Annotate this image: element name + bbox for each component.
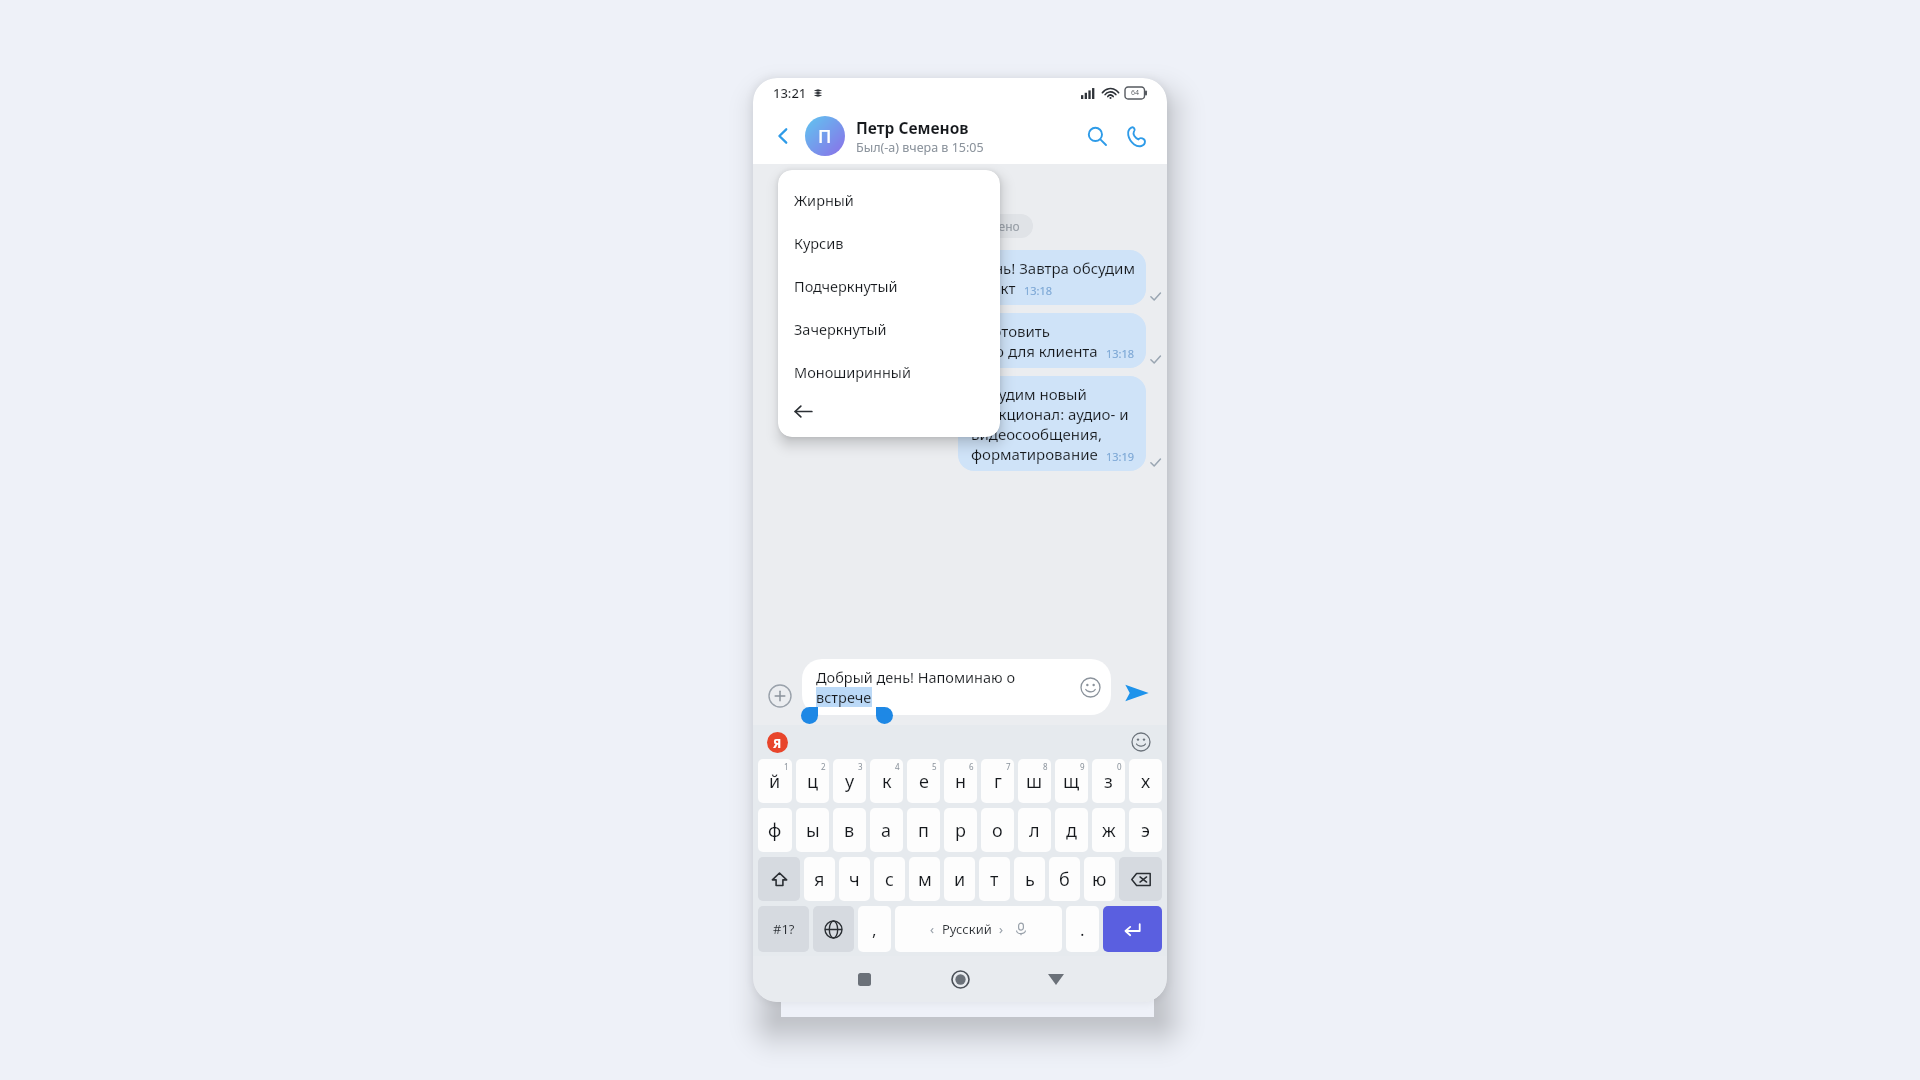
button[interactable]: ‹ [895, 906, 1062, 952]
button[interactable]: д [1055, 808, 1088, 852]
button[interactable]: Нужно подготовить [894, 313, 1146, 368]
button[interactable]: т [979, 857, 1010, 901]
button[interactable]: Моноширинный [778, 350, 1000, 393]
button[interactable]: р [944, 808, 977, 852]
staticText: 13:18 [1106, 346, 1135, 361]
staticText: Сообщение удалено [901, 218, 1020, 234]
button[interactable]: . [1066, 906, 1099, 952]
staticText: р [955, 818, 966, 843]
staticText: Обсудим новый [971, 384, 1087, 404]
staticText: ‹ [930, 920, 935, 938]
button[interactable]: л [1018, 808, 1051, 852]
staticText: › [999, 920, 1004, 938]
button[interactable]: ч [839, 857, 870, 901]
staticText: ю [1092, 867, 1107, 892]
button[interactable]: Курсив [778, 221, 1000, 264]
button[interactable]: ж [1092, 808, 1125, 852]
staticText: в [844, 818, 855, 843]
staticText: щ [1063, 769, 1080, 794]
button[interactable]: Зачеркнутый [778, 307, 1000, 350]
button[interactable]: Home [938, 957, 982, 1001]
staticText: #1? [773, 920, 795, 938]
button[interactable]: Подчеркнутый [778, 264, 1000, 307]
button[interactable]: в [833, 808, 866, 852]
button[interactable]: и [944, 857, 975, 901]
staticText: з [1104, 769, 1113, 794]
button[interactable]: ш [1018, 759, 1051, 803]
button[interactable]: б [1049, 857, 1080, 901]
button[interactable]: Emoji keyboard [1129, 730, 1153, 754]
button[interactable]: Yandex [767, 732, 788, 753]
staticText: а [881, 818, 892, 843]
button[interactable]: Backspace [1119, 857, 1162, 901]
button[interactable]: м [909, 857, 940, 901]
button[interactable]: о [981, 808, 1014, 852]
button[interactable]: х [1129, 759, 1162, 803]
button[interactable]: г [981, 759, 1014, 803]
button[interactable]: Search [1079, 118, 1115, 154]
staticText: Моноширинный [794, 362, 911, 382]
button[interactable]: Call [1117, 118, 1153, 154]
button[interactable]: з [1092, 759, 1125, 803]
staticText: Русский [942, 920, 992, 938]
button[interactable]: #1? [758, 906, 809, 952]
staticText: г [994, 769, 1002, 794]
staticText: Жирный [794, 190, 854, 210]
staticText: к [882, 769, 892, 794]
button[interactable]: ю [1084, 857, 1115, 901]
staticText: 9 [1080, 761, 1085, 772]
button[interactable]: Жирный [778, 178, 1000, 221]
staticText: новый проект [914, 278, 1016, 298]
staticText: 13:21 [773, 84, 807, 102]
button[interactable]: Enter [1103, 906, 1162, 952]
button[interactable]: Send [1117, 675, 1157, 711]
staticText: о [992, 818, 1003, 843]
button[interactable]: Back [767, 120, 799, 152]
button[interactable]: к [870, 759, 903, 803]
staticText: л [1029, 818, 1040, 843]
staticText: Курсив [794, 233, 844, 253]
button[interactable]: ь [1014, 857, 1045, 901]
staticText: Петр Семенов [856, 117, 969, 138]
button[interactable]: Back [1034, 957, 1078, 1001]
button[interactable]: Language [813, 906, 854, 952]
staticText: ы [806, 818, 820, 843]
button[interactable]: Shift [758, 857, 800, 901]
button[interactable]: Recents [842, 957, 886, 1001]
button[interactable]: П [805, 116, 845, 156]
button[interactable]: э [1129, 808, 1162, 852]
button[interactable]: а [870, 808, 903, 852]
button[interactable]: я [804, 857, 835, 901]
button[interactable]: Добрый день! Завтра обсудим [901, 250, 1146, 305]
button[interactable]: Emoji [1077, 674, 1103, 700]
button[interactable]: Attach [763, 681, 797, 711]
button[interactable]: н [944, 759, 977, 803]
staticText: у [845, 769, 855, 794]
staticText: , [872, 918, 877, 941]
staticText: 5 [932, 761, 937, 772]
button[interactable]: Петр Семенов [856, 117, 1079, 156]
button[interactable]: ф [758, 808, 792, 852]
button[interactable]: й [758, 759, 792, 803]
button[interactable]: с [874, 857, 905, 901]
staticText: П [818, 124, 832, 149]
staticText: видеосообщения, [971, 424, 1102, 444]
staticText: я [814, 867, 825, 892]
staticText: 13:18 [1024, 283, 1053, 298]
button[interactable]: е [907, 759, 940, 803]
button[interactable]: Добрый день! Напоминаю о [802, 659, 1111, 715]
button[interactable]: ы [796, 808, 829, 852]
button[interactable]: ц [796, 759, 829, 803]
button[interactable]: , [858, 906, 891, 952]
staticText: Нужно подготовить [907, 321, 1050, 341]
button[interactable]: щ [1055, 759, 1088, 803]
staticText: 3 [858, 761, 863, 772]
staticText: 2 [821, 761, 826, 772]
button[interactable]: у [833, 759, 866, 803]
staticText: ш [1026, 769, 1043, 794]
button[interactable]: Back [778, 393, 1000, 429]
staticText: м [918, 867, 932, 892]
button[interactable]: п [907, 808, 940, 852]
button[interactable]: Обсудим новый [958, 376, 1146, 471]
